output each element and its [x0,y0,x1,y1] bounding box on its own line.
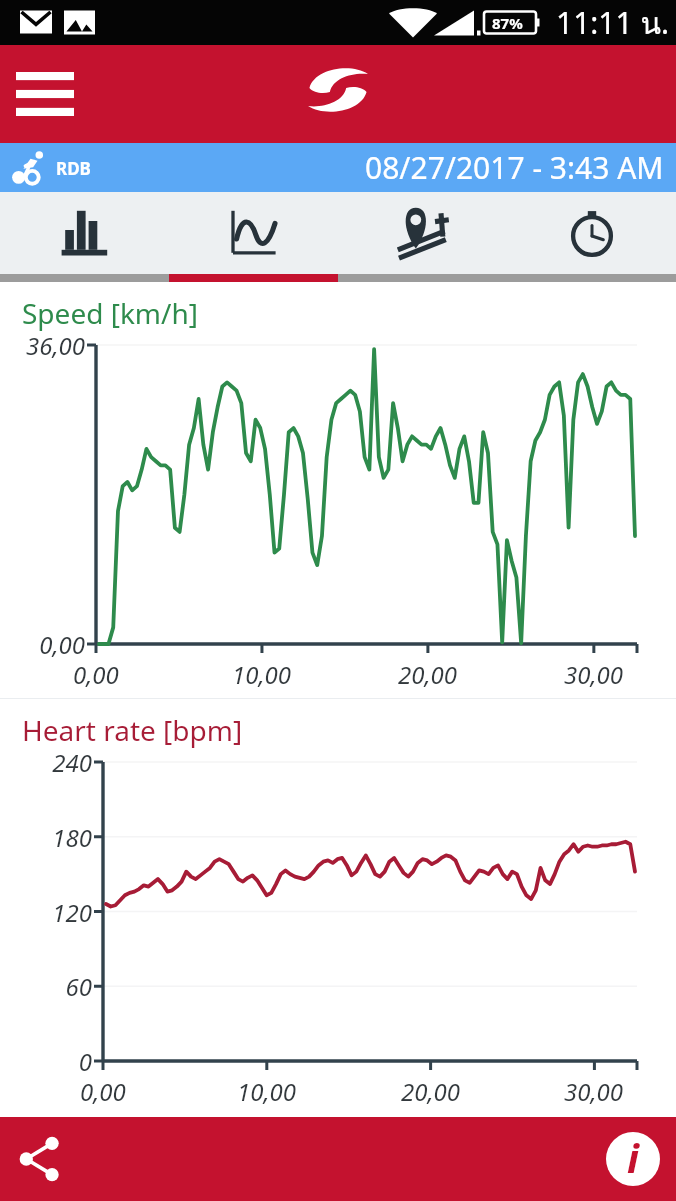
button[interactable]: Laps [507,192,676,274]
staticText: 87% [492,13,523,33]
button[interactable]: Share [6,1124,76,1194]
staticText: 20,00 [401,1075,461,1108]
button[interactable]: Open navigation menu [8,62,82,126]
staticText: i [627,1132,639,1184]
staticText: 30,00 [564,1075,624,1108]
staticText: 30,00 [564,658,624,691]
staticText: 20,00 [398,658,458,691]
staticText: 11:11 น. [556,0,670,45]
button[interactable]: Charts [169,192,338,274]
staticText: Heart rate [bpm] [22,711,243,749]
button[interactable]: Map [338,192,507,274]
staticText: 60 [65,970,92,1003]
button[interactable]: Info [602,1128,664,1190]
staticText: 0 [78,1045,92,1078]
staticText: Speed [km/h] [22,294,198,332]
staticText: 120 [52,896,92,929]
button[interactable]: RDB [0,143,676,192]
staticText: 0,00 [39,628,85,661]
staticText: 240 [52,746,92,779]
staticText: 10,00 [232,658,292,691]
staticText: RDB [56,157,91,180]
button[interactable]: Statistics [0,192,169,274]
staticText: 0,00 [73,658,119,691]
staticText: 180 [52,821,92,854]
staticText: 10,00 [237,1075,297,1108]
staticText: 0,00 [80,1075,126,1108]
staticText: 36,00 [25,329,85,362]
staticText: 08/27/2017 - 3:43 AM [365,147,664,188]
